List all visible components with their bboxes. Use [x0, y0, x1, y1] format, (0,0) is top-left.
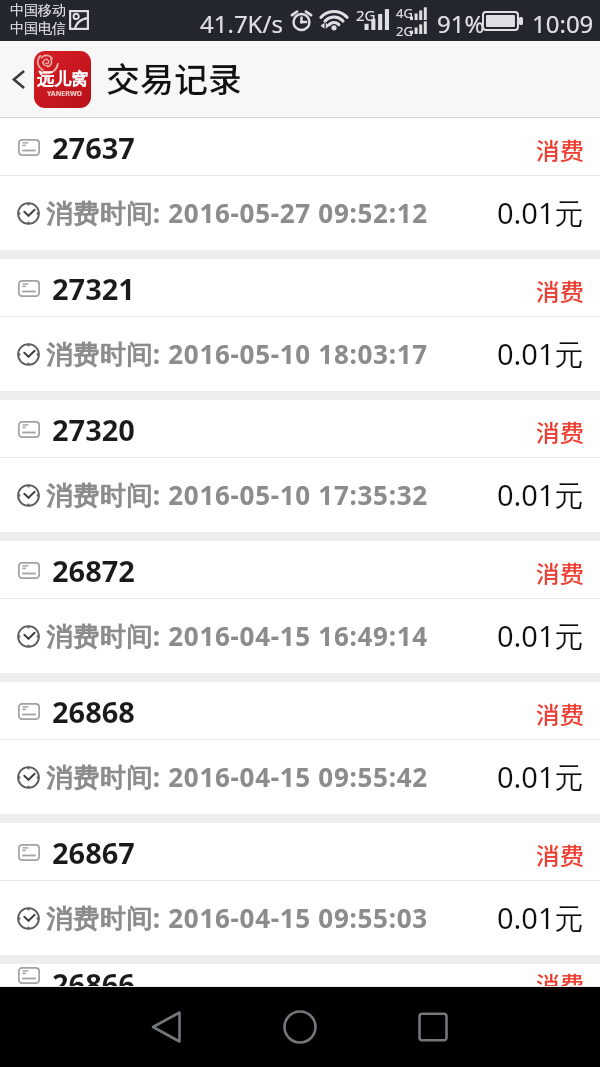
- staticText: 中国移动: [10, 2, 66, 20]
- staticText: 27321: [52, 269, 135, 308]
- staticText: 0.01元: [497, 334, 584, 374]
- staticText: 消费: [536, 966, 584, 989]
- staticText: 交易记录: [106, 53, 242, 102]
- button[interactable]: 27321: [0, 259, 600, 400]
- staticText: 消费时间: 2016-05-10 17:35:32: [46, 477, 428, 513]
- staticText: 消费: [536, 837, 584, 872]
- staticText: 消费: [536, 414, 584, 449]
- staticText: 41.7K/s: [200, 7, 283, 40]
- staticText: 消费时间: 2016-04-15 16:49:14: [46, 618, 428, 654]
- button[interactable]: App logo: [34, 51, 91, 108]
- staticText: 0.01元: [497, 616, 584, 656]
- staticText: 27637: [52, 128, 135, 167]
- staticText: 27320: [52, 410, 135, 449]
- staticText: 26867: [52, 833, 135, 872]
- staticText: 91%: [437, 7, 485, 40]
- button[interactable]: Back: [129, 987, 203, 1067]
- staticText: 26868: [52, 692, 135, 731]
- staticText: 消费: [536, 273, 584, 308]
- staticText: 10:09: [532, 7, 594, 40]
- staticText: 消费: [536, 555, 584, 590]
- staticText: 26872: [52, 551, 135, 590]
- staticText: 0.01元: [497, 898, 584, 938]
- staticText: 2G: [356, 5, 376, 25]
- staticText: YANERWO: [36, 89, 91, 99]
- staticText: 远儿窝: [34, 69, 91, 90]
- button[interactable]: 27637: [0, 118, 600, 259]
- button[interactable]: Recent apps: [396, 987, 470, 1067]
- button[interactable]: 27320: [0, 400, 600, 541]
- button[interactable]: Back: [4, 41, 34, 117]
- staticText: 0.01元: [497, 193, 584, 233]
- button[interactable]: 26872: [0, 541, 600, 682]
- button[interactable]: Home: [263, 987, 337, 1067]
- staticText: 4G: [396, 4, 413, 22]
- staticText: 26866: [52, 964, 135, 987]
- staticText: 0.01元: [497, 757, 584, 797]
- button[interactable]: 26868: [0, 682, 600, 823]
- staticText: 中国电信: [10, 20, 66, 38]
- staticText: 消费时间: 2016-05-27 09:52:12: [46, 195, 428, 231]
- button[interactable]: 26866: [0, 964, 600, 987]
- button[interactable]: 26867: [0, 823, 600, 964]
- staticText: 0.01元: [497, 475, 584, 515]
- staticText: 消费时间: 2016-05-10 18:03:17: [46, 336, 428, 372]
- staticText: 消费: [536, 696, 584, 731]
- staticText: 消费时间: 2016-04-15 09:55:42: [46, 759, 428, 795]
- staticText: 消费时间: 2016-04-15 09:55:03: [46, 900, 428, 936]
- staticText: 2G: [396, 22, 413, 36]
- staticText: 消费: [536, 132, 584, 167]
